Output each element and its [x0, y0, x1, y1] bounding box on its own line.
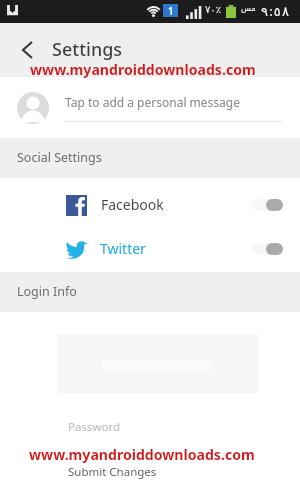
staticText: Facebook [101, 195, 164, 214]
staticText: Twitter [100, 239, 146, 258]
staticText: 1 [168, 4, 174, 17]
button[interactable]: Twitter [0, 227, 300, 271]
staticText: www.myandroiddownloads.com [29, 445, 255, 464]
staticText: Social Settings [17, 149, 102, 166]
staticText: مس [241, 4, 256, 13]
button[interactable]: Facebook toggle [252, 195, 283, 215]
button[interactable]: Tap to add a personal message [0, 77, 300, 138]
staticText: ٩:٥٨ [261, 2, 291, 20]
staticText: ٧٠٪ [205, 4, 222, 16]
button[interactable]: Back [14, 37, 40, 63]
button[interactable]: Submit Changes [0, 464, 300, 480]
staticText: Submit Changes [68, 464, 157, 480]
staticText: Settings [52, 37, 123, 62]
button[interactable]: Facebook [0, 183, 300, 227]
staticText: www.myandroiddownloads.com [30, 60, 256, 79]
button[interactable]: Twitter toggle [252, 239, 283, 259]
staticText: Login Info [17, 283, 77, 300]
staticText: Tap to add a personal message [65, 94, 240, 110]
staticText: Password [68, 419, 121, 435]
